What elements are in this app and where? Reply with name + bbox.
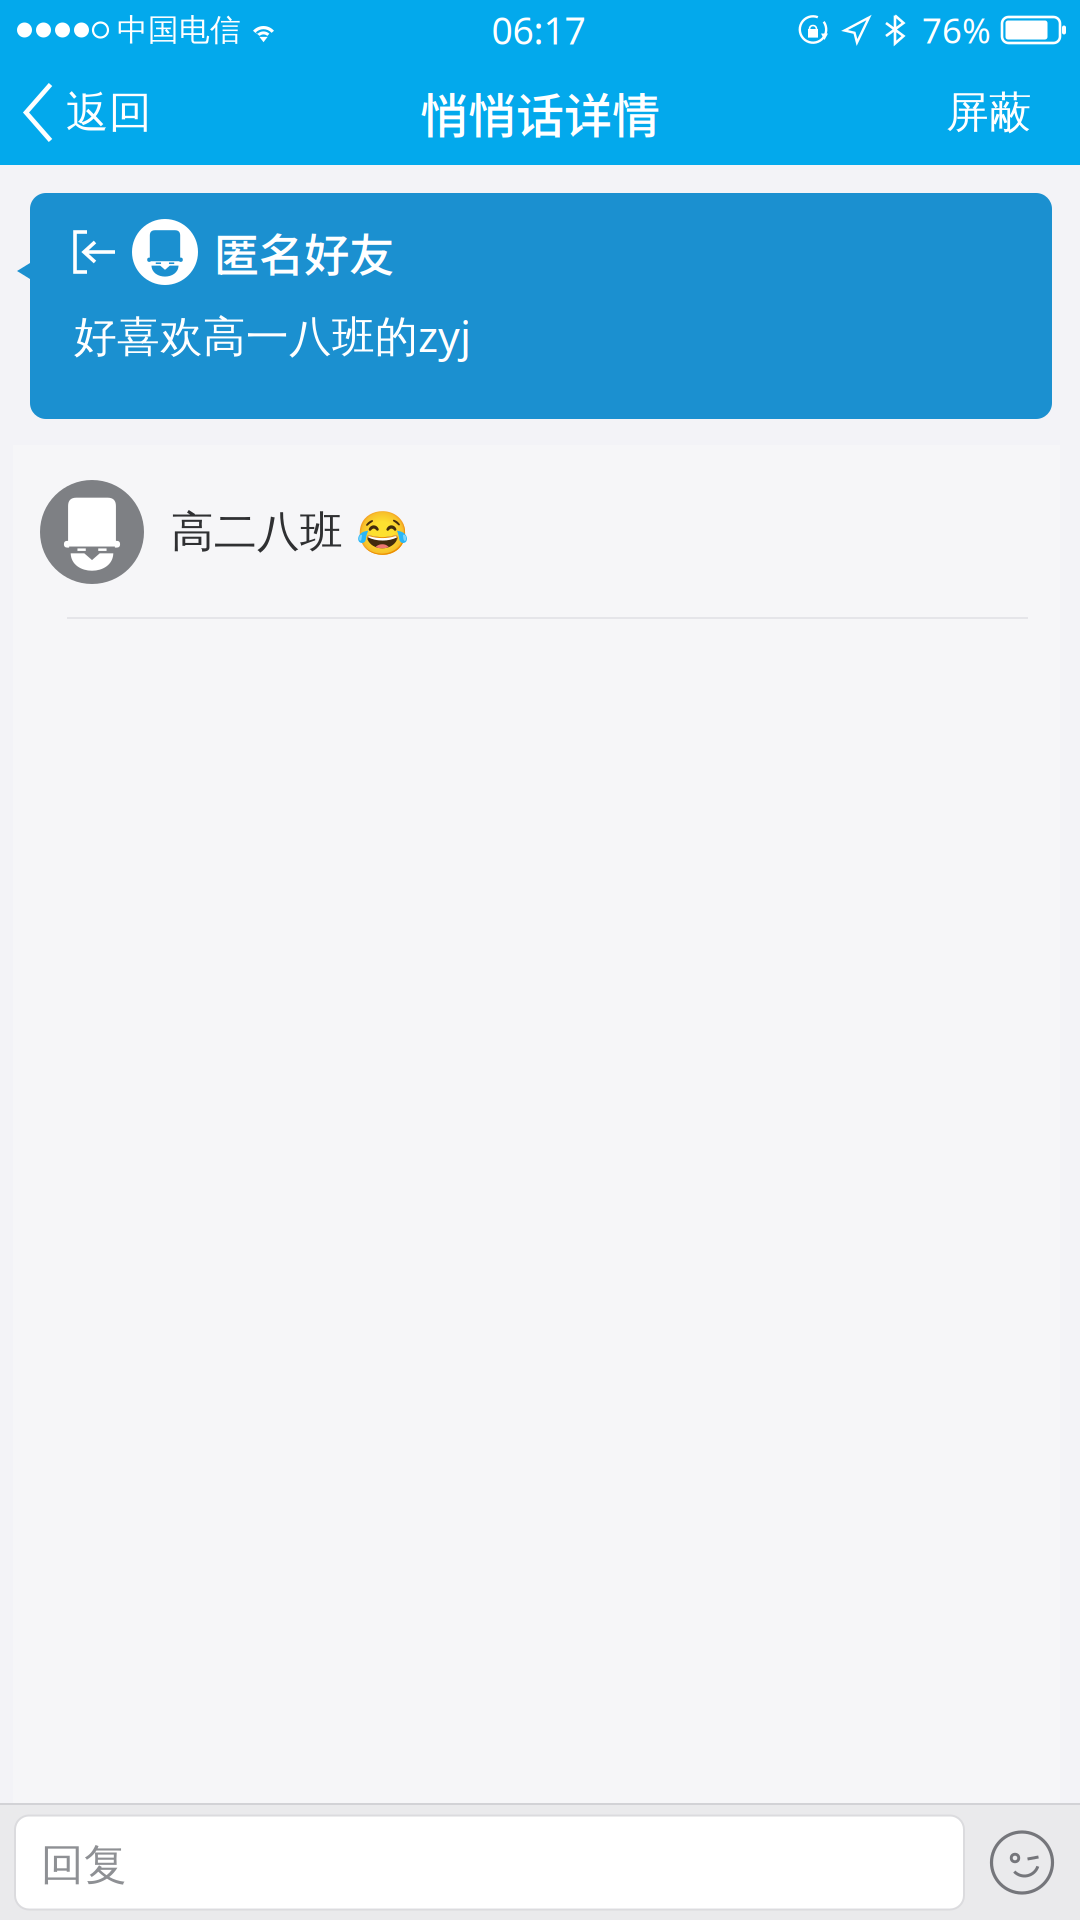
staticText: 高二八班 😂 bbox=[171, 506, 409, 558]
staticText: 好喜欢高一八班的zyj bbox=[74, 307, 471, 364]
staticText: 悄悄话详情 bbox=[420, 78, 660, 147]
staticText: 中国电信 bbox=[117, 11, 241, 49]
button[interactable]: 回复 bbox=[15, 1815, 964, 1909]
staticText: 屏蔽 bbox=[946, 86, 1032, 139]
staticText: 返回 bbox=[66, 86, 152, 139]
button[interactable]: 返回 bbox=[0, 60, 178, 165]
staticText: 06:17 bbox=[491, 5, 585, 55]
button[interactable]: Emoji keyboard bbox=[968, 1807, 1076, 1917]
button[interactable]: 屏蔽 bbox=[912, 60, 1080, 165]
staticText: 回复 bbox=[41, 1839, 127, 1891]
button[interactable]: 高二八班 😂 bbox=[13, 445, 1060, 619]
staticText: 76% bbox=[922, 7, 991, 53]
staticText: 匿名好友 bbox=[214, 219, 394, 285]
